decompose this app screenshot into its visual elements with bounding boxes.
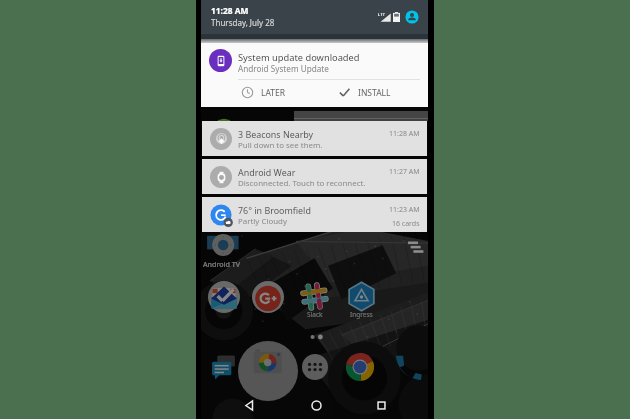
staticText: 11:28 AM [211,5,249,16]
button[interactable]: LATER [241,86,286,99]
button[interactable]: Inbox [208,281,240,313]
button[interactable]: Home [309,398,324,413]
button[interactable]: Google Plus [252,281,284,313]
staticText: 11:27 AM [389,167,420,177]
button[interactable]: Chrome [345,352,375,382]
staticText: Disconnected. Touch to reconnect. [238,178,366,189]
button[interactable]: Phone [395,353,422,380]
staticText: Android Wear [238,166,296,178]
staticText: System update downloaded [238,51,360,64]
button[interactable]: Back [242,398,257,413]
button[interactable]: 3 Beacons Nearby [202,121,427,156]
staticText: INSTALL [358,87,391,99]
button[interactable]: Recents [374,398,389,413]
staticText: Android TV [203,259,241,269]
staticText: 11:28 AM [389,129,420,139]
staticText: Android System Update [238,63,329,74]
staticText: Ingress [350,310,373,319]
staticText: Pull down to see them. [238,140,323,151]
staticText: 16 cards [392,219,420,229]
staticText: Thursday, July 28 [211,17,275,28]
button[interactable]: Android Wear [202,159,427,194]
staticText: 76° in Broomfield [238,204,311,216]
button[interactable]: Messages [211,354,237,380]
staticText: Partly Cloudy [238,216,287,227]
button[interactable]: 76° in Broomfield [202,197,427,232]
button[interactable]: Slack [299,281,330,312]
staticText: Slack [307,310,323,319]
button[interactable]: Camera widget [238,341,298,401]
staticText: 3 Beacons Nearby [238,128,314,140]
staticText: 11:23 AM [389,205,420,215]
button[interactable]: INSTALL [338,86,391,99]
button[interactable]: Ingress [346,281,377,312]
button[interactable]: All apps [302,354,328,380]
staticText: LATER [261,87,286,99]
button[interactable]: Android TV [205,234,240,256]
button[interactable]: Widget [408,241,424,254]
